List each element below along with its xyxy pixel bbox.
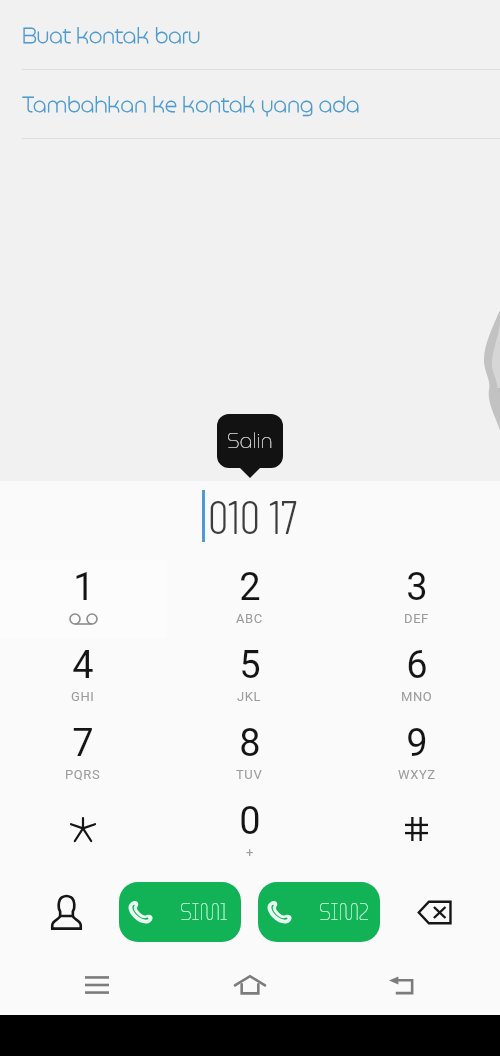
button[interactable]: Back (374, 957, 430, 1013)
button[interactable]: 1 (0, 560, 166, 638)
staticText: Salin (227, 425, 273, 457)
button[interactable] (333, 794, 500, 872)
button[interactable]: 5 (166, 638, 333, 716)
button[interactable]: 8 (166, 716, 333, 794)
staticText: + (246, 845, 254, 860)
staticText: SIM1 (180, 893, 228, 931)
button[interactable]: Contacts (34, 880, 98, 944)
staticText: SIM2 (319, 893, 369, 931)
staticText: 3 (406, 565, 428, 610)
staticText: DEF (404, 611, 429, 626)
staticText: GHI (71, 689, 95, 704)
button[interactable]: SIM2 (258, 882, 380, 942)
staticText: 7 (72, 721, 94, 766)
staticText: 8 (239, 721, 261, 766)
button[interactable]: SIM1 (119, 882, 241, 942)
button[interactable] (0, 794, 166, 872)
staticText: ABC (236, 611, 263, 626)
button[interactable]: Home (222, 957, 278, 1013)
staticText: Tambahkan ke kontak yang ada (22, 87, 360, 121)
button[interactable]: 7 (0, 716, 166, 794)
button[interactable]: Tambahkan ke kontak yang ada (0, 70, 500, 138)
staticText: 2 (239, 565, 261, 610)
staticText: 1 (73, 565, 95, 610)
staticText: TUV (236, 767, 263, 782)
button[interactable]: Recent apps (69, 957, 125, 1013)
button[interactable]: 4 (0, 638, 166, 716)
staticText: JKL (237, 689, 262, 704)
staticText: 010 17 (208, 488, 298, 543)
button[interactable]: 9 (333, 716, 500, 794)
staticText: MNO (401, 689, 433, 704)
staticText: Buat kontak baru (22, 18, 201, 52)
button[interactable]: Buat kontak baru (0, 0, 500, 69)
staticText: 9 (406, 721, 428, 766)
button[interactable]: Salin (217, 414, 283, 468)
button[interactable]: 2 (166, 560, 333, 638)
staticText: WXYZ (398, 767, 436, 782)
staticText: 6 (406, 643, 428, 688)
staticText: 0 (239, 799, 261, 844)
button[interactable]: 6 (333, 638, 500, 716)
staticText: 4 (72, 643, 94, 688)
button[interactable]: 3 (333, 560, 500, 638)
button[interactable]: 0 (166, 794, 333, 872)
staticText: PQRS (65, 767, 101, 782)
button[interactable]: Backspace (403, 880, 467, 944)
staticText: 5 (239, 643, 261, 688)
